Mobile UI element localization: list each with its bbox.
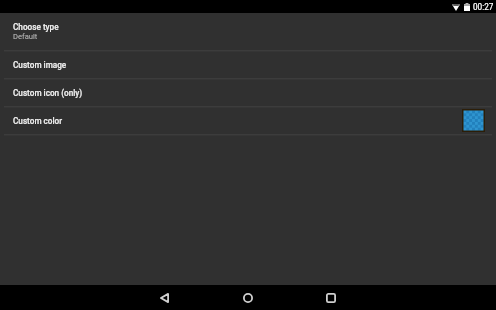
button[interactable]: Choose type — [0, 13, 496, 50]
button[interactable]: Custom image — [0, 51, 496, 78]
button[interactable]: Custom icon (only) — [0, 79, 496, 106]
button[interactable]: Back — [123, 285, 206, 310]
staticText: Default — [13, 32, 38, 41]
staticText: Choose type — [13, 22, 59, 32]
staticText: Custom color — [13, 116, 63, 126]
staticText: 00:27 — [473, 2, 494, 12]
button[interactable]: Recent apps — [289, 285, 372, 310]
button[interactable]: Home — [206, 285, 289, 310]
button[interactable]: Custom color — [0, 107, 496, 134]
staticText: Custom image — [13, 60, 67, 70]
staticText: Custom icon (only) — [13, 88, 83, 98]
